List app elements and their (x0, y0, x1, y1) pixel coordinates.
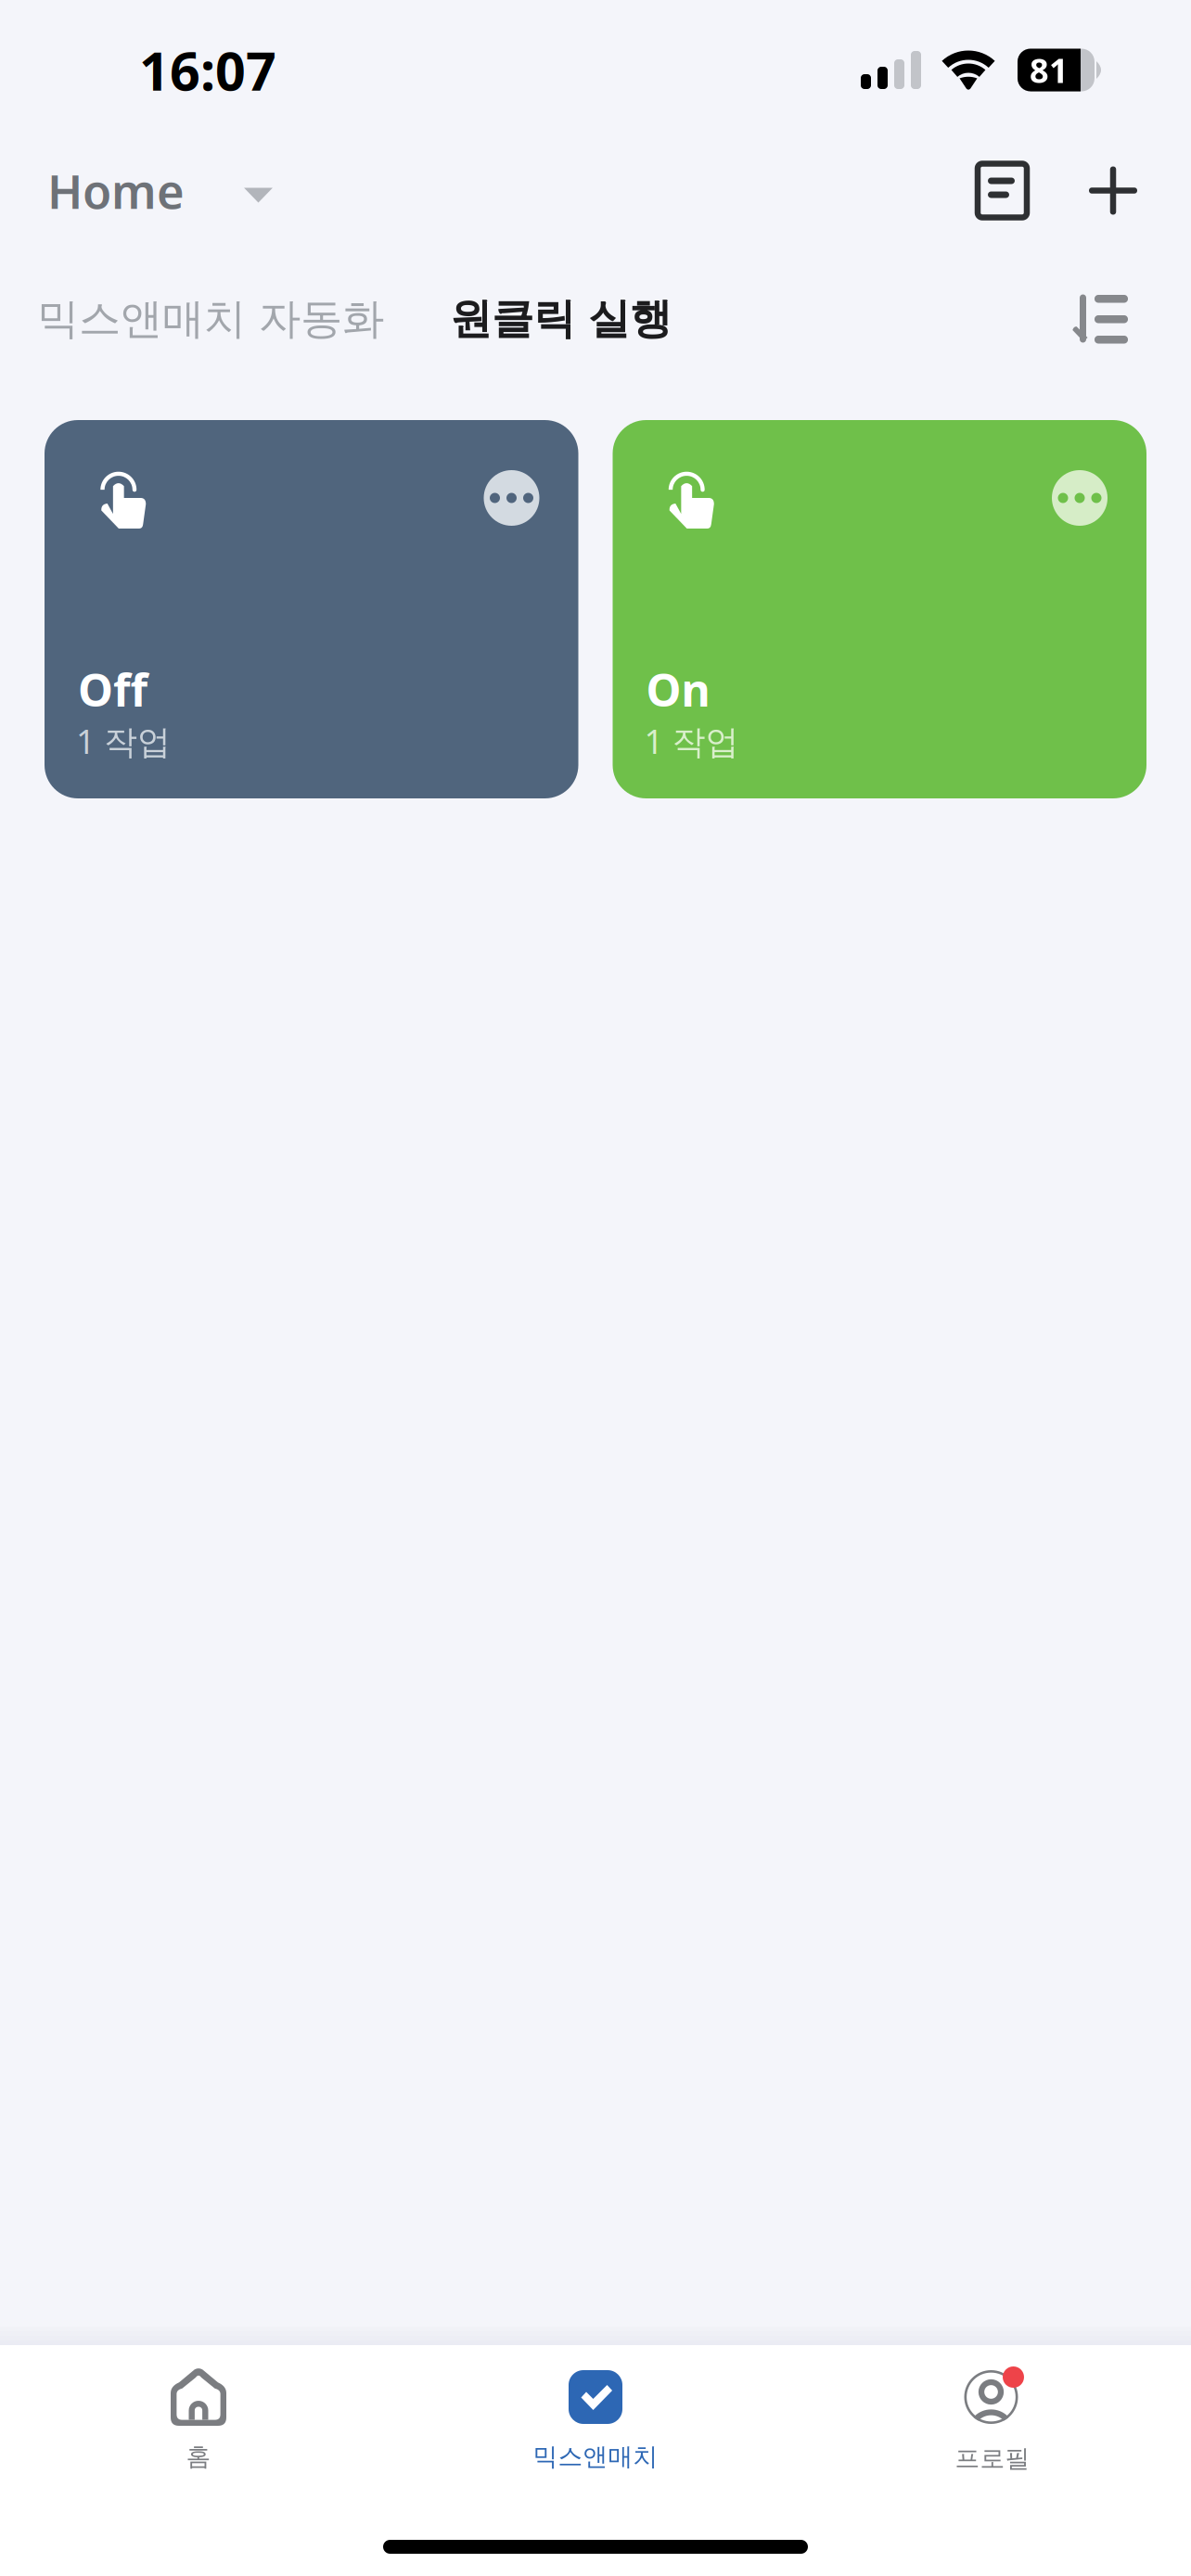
button[interactable]: Sort (1072, 295, 1191, 343)
button[interactable]: 원클릭 실행 (384, 293, 672, 345)
staticText: On (646, 660, 710, 719)
staticText: 믹스앤매치 자동화 (37, 293, 384, 345)
staticText: 믹스앤매치 (533, 2442, 658, 2472)
button[interactable]: On (613, 420, 1146, 798)
staticText: 프로필 (955, 2443, 1030, 2474)
button[interactable]: Home (0, 159, 273, 222)
staticText: Home (47, 159, 185, 222)
button[interactable]: Notes (978, 164, 1027, 217)
button[interactable]: 프로필 (794, 2345, 1191, 2474)
staticText: 1 작업 (644, 719, 739, 763)
button[interactable]: 홈 (0, 2347, 397, 2472)
button[interactable]: 믹스앤매치 (397, 2347, 794, 2472)
button[interactable]: 믹스앤매치 자동화 (0, 293, 384, 345)
staticText: 홈 (186, 2442, 211, 2472)
button[interactable]: Off (45, 420, 578, 798)
staticText: 81 (1030, 48, 1069, 92)
staticText: 1 작업 (76, 719, 171, 763)
staticText: 원클릭 실행 (450, 293, 672, 345)
staticText: Off (78, 660, 147, 719)
staticText: 16:07 (139, 35, 276, 105)
button[interactable]: Add (1027, 166, 1137, 215)
